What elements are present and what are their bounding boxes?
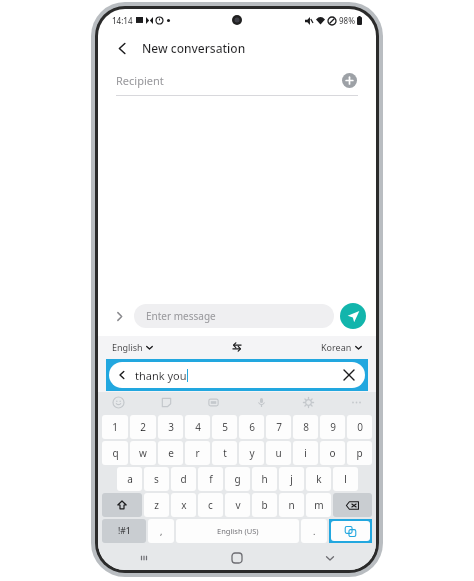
- button[interactable]: t: [212, 441, 237, 465]
- button[interactable]: d: [171, 467, 196, 491]
- button[interactable]: h: [252, 467, 277, 491]
- button[interactable]: o: [320, 441, 345, 465]
- button[interactable]: s: [144, 467, 169, 491]
- button[interactable]: 6: [239, 415, 264, 439]
- staticText: r: [195, 446, 200, 460]
- button[interactable]: 8: [293, 415, 318, 439]
- staticText: Korean: [321, 341, 352, 353]
- button[interactable]: n: [279, 493, 304, 517]
- button[interactable]: Shift: [102, 493, 142, 517]
- button[interactable]: 5: [212, 415, 237, 439]
- button[interactable]: z: [144, 493, 169, 517]
- button[interactable]: Settings: [300, 394, 316, 410]
- staticText: 5: [222, 420, 228, 434]
- staticText: 1: [112, 420, 118, 434]
- button[interactable]: !#1: [102, 519, 146, 543]
- button[interactable]: m: [306, 493, 331, 517]
- button[interactable]: Add recipient: [340, 71, 358, 89]
- button[interactable]: Home: [190, 546, 283, 570]
- staticText: .: [313, 525, 316, 537]
- button[interactable]: Clear: [341, 367, 357, 383]
- staticText: 3: [168, 420, 174, 434]
- button[interactable]: i: [293, 441, 318, 465]
- button[interactable]: f: [198, 467, 223, 491]
- button[interactable]: u: [266, 441, 291, 465]
- button[interactable]: b: [252, 493, 277, 517]
- staticText: g: [234, 472, 241, 486]
- staticText: 0: [357, 420, 363, 434]
- button[interactable]: Translate: [331, 521, 370, 541]
- button[interactable]: Enter message: [134, 304, 334, 328]
- button[interactable]: Send: [340, 303, 366, 329]
- button[interactable]: thank you: [109, 362, 365, 388]
- button[interactable]: r: [185, 441, 210, 465]
- staticText: 6: [249, 420, 255, 434]
- staticText: l: [344, 472, 347, 486]
- button[interactable]: GIF: [205, 394, 221, 410]
- button[interactable]: a: [117, 467, 142, 491]
- staticText: j: [290, 472, 293, 486]
- staticText: s: [154, 472, 159, 486]
- staticText: y: [249, 446, 255, 460]
- staticText: n: [288, 498, 295, 512]
- staticText: c: [208, 498, 213, 512]
- button[interactable]: q: [102, 441, 128, 465]
- staticText: 98%: [339, 15, 355, 26]
- button[interactable]: Recipient: [116, 65, 358, 95]
- staticText: h: [261, 472, 268, 486]
- button[interactable]: ,: [148, 519, 174, 543]
- button[interactable]: Emoji: [110, 394, 126, 410]
- staticText: !#1: [118, 525, 131, 537]
- staticText: 2: [140, 420, 146, 434]
- button[interactable]: 1: [102, 415, 128, 439]
- staticText: thank you: [135, 368, 187, 383]
- button[interactable]: 4: [185, 415, 210, 439]
- staticText: a: [127, 472, 133, 486]
- staticText: m: [314, 498, 324, 512]
- staticText: q: [112, 446, 119, 460]
- staticText: e: [168, 446, 174, 460]
- staticText: d: [180, 472, 187, 486]
- staticText: Recipient: [116, 73, 164, 88]
- button[interactable]: c: [198, 493, 223, 517]
- button[interactable]: Back: [110, 36, 134, 60]
- staticText: 7: [276, 420, 282, 434]
- button[interactable]: v: [225, 493, 250, 517]
- button[interactable]: Hide keyboard: [283, 546, 376, 570]
- staticText: Enter message: [146, 309, 216, 323]
- staticText: English: [112, 341, 143, 353]
- button[interactable]: x: [171, 493, 196, 517]
- button[interactable]: 7: [266, 415, 291, 439]
- button[interactable]: Recents: [98, 546, 190, 570]
- button[interactable]: English (US): [176, 519, 299, 543]
- staticText: o: [329, 446, 336, 460]
- button[interactable]: w: [130, 441, 156, 465]
- button[interactable]: More options: [348, 394, 364, 410]
- button[interactable]: k: [306, 467, 331, 491]
- button[interactable]: Swap languages: [229, 339, 245, 355]
- button[interactable]: g: [225, 467, 250, 491]
- button[interactable]: Korean: [321, 341, 362, 353]
- button[interactable]: l: [333, 467, 358, 491]
- staticText: k: [316, 472, 322, 486]
- staticText: 4: [195, 420, 201, 434]
- button[interactable]: Voice input: [253, 394, 269, 410]
- button[interactable]: Stickers: [158, 394, 174, 410]
- button[interactable]: 0: [347, 415, 372, 439]
- button[interactable]: 9: [320, 415, 345, 439]
- button[interactable]: y: [239, 441, 264, 465]
- button[interactable]: e: [158, 441, 183, 465]
- staticText: w: [139, 446, 147, 460]
- staticText: New conversation: [142, 40, 246, 56]
- button[interactable]: 3: [158, 415, 183, 439]
- button[interactable]: p: [347, 441, 372, 465]
- button[interactable]: Expand options: [108, 305, 130, 327]
- button[interactable]: 2: [130, 415, 156, 439]
- staticText: 8: [303, 420, 309, 434]
- button[interactable]: .: [301, 519, 327, 543]
- button[interactable]: English: [112, 341, 153, 353]
- staticText: p: [356, 446, 363, 460]
- button[interactable]: Backspace: [333, 493, 372, 517]
- staticText: 14:14: [112, 15, 133, 26]
- button[interactable]: j: [279, 467, 304, 491]
